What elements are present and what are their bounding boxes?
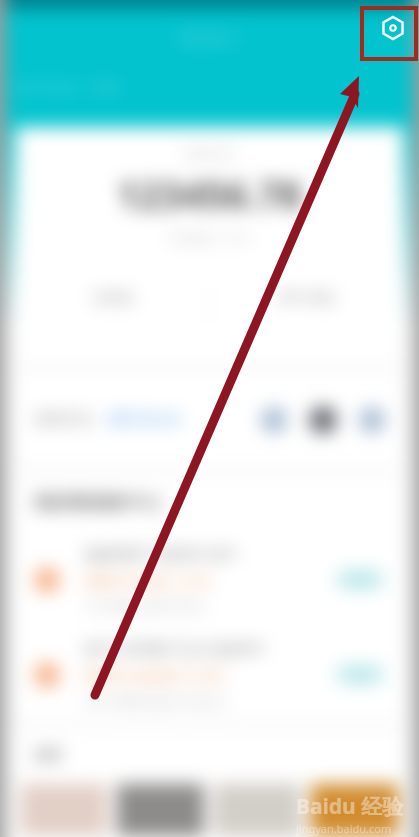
staticText: 预期年化收益 5.20% (84, 571, 212, 590)
staticText: 7天可赎回 起投1000元 (84, 598, 206, 614)
staticText: 123456.78 (117, 168, 302, 220)
staticText: 新手专享理财产品计划推荐中 (84, 641, 266, 659)
staticText: 邀请好友 (34, 410, 94, 429)
button[interactable]: 总收益 (16, 289, 209, 307)
staticText: 我的账户 (178, 29, 242, 49)
staticText: Baidu 经验 (296, 792, 404, 821)
staticText: 我的理财服务中心 (34, 493, 162, 513)
button[interactable]: 累计收益 (210, 289, 403, 307)
button[interactable]: 稳健理财产品推荐计划中 (16, 532, 403, 627)
button[interactable]: 查看 (335, 664, 385, 685)
button[interactable]: 查看 (335, 569, 385, 590)
staticText: 赚取奖励金 (108, 410, 183, 429)
staticText: 查看 (349, 668, 371, 682)
staticText: jingyan.baidu.com (296, 821, 392, 836)
button[interactable]: Settings (371, 6, 415, 50)
staticText: 30天可赎回 起投100元以上 (84, 693, 230, 709)
staticText: 稳健理财产品推荐计划中 (84, 546, 238, 564)
button[interactable]: 新手专享理财产品计划推荐中 (16, 627, 403, 722)
staticText: 查看 (349, 573, 371, 587)
staticText: 推荐 (34, 747, 62, 765)
staticText: 预期年化收益率 6.80% (84, 666, 226, 685)
